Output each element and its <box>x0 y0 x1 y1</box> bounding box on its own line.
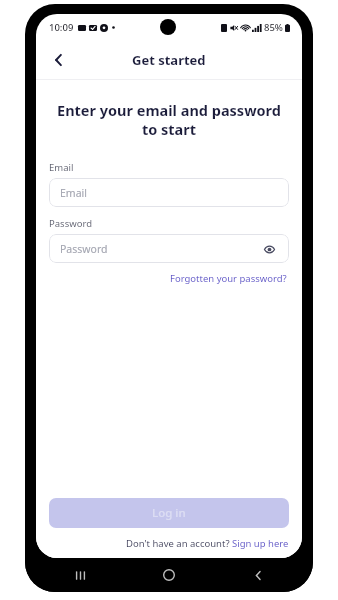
staticText: Don't have an account? Sign up here <box>126 537 289 550</box>
staticText: 10:09 <box>49 21 74 34</box>
staticText: Password <box>60 242 108 256</box>
staticText: Get started <box>132 51 206 69</box>
button[interactable]: Recent apps <box>65 560 95 590</box>
staticText: Email <box>49 161 74 174</box>
staticText: Forgotten your password? <box>170 272 287 285</box>
staticText: Email <box>60 186 87 200</box>
staticText: Enter your email and password to start <box>49 100 289 139</box>
button[interactable]: Don't have an account? Sign up here <box>126 537 289 550</box>
staticText: Password <box>49 217 92 230</box>
button[interactable]: Forgotten your password? <box>168 270 289 287</box>
button[interactable]: Show password <box>260 240 278 258</box>
button[interactable]: Back <box>42 43 76 77</box>
button[interactable]: Home <box>154 560 184 590</box>
staticText: 85% <box>264 21 283 34</box>
button[interactable]: Email <box>49 178 289 207</box>
button[interactable]: Back <box>243 560 273 590</box>
button[interactable]: Password <box>49 234 289 263</box>
button[interactable]: Log in <box>49 498 289 528</box>
staticText: Log in <box>152 505 186 521</box>
